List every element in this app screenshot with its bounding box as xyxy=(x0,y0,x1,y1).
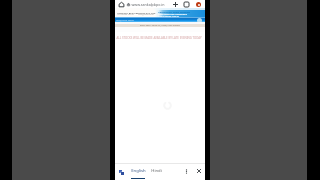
staticText: Hindi xyxy=(151,168,162,174)
button[interactable]: Close xyxy=(194,164,204,180)
button[interactable]: Menu xyxy=(197,18,202,23)
staticText: +91 98765 43210 info@sankalp.in xyxy=(117,13,154,16)
staticText: English xyxy=(131,168,146,174)
staticText: www.sankalpbpo.in xyxy=(131,2,165,7)
button[interactable]: More options xyxy=(182,164,190,180)
button[interactable]: Account xyxy=(192,0,205,8)
button[interactable]: Google Translate xyxy=(116,164,127,180)
staticText: ADMISSION OPEN SESSION xyxy=(158,10,190,13)
button[interactable]: Switch tabs xyxy=(181,0,192,8)
staticText: Regd. office : Sector 62, Noida, Uttar P… xyxy=(140,24,180,27)
staticText: ALL STOCKS WILL BE MADE AVAILABLE BY LAT… xyxy=(116,36,202,40)
staticText: NEW BATCHES STARTING xyxy=(158,12,187,15)
staticText: SANKALP BPO SERVICES PVT LTD. xyxy=(117,11,156,14)
button[interactable]: www.sankalpbpo.in xyxy=(127,0,170,8)
staticText: ENQUIRE NOW xyxy=(116,18,134,21)
button[interactable]: English xyxy=(129,164,147,180)
button[interactable]: Hindi xyxy=(148,164,164,180)
staticText: CALL 98765 43210 xyxy=(158,14,179,17)
button[interactable]: Home xyxy=(115,0,127,8)
button[interactable]: New tab xyxy=(170,0,181,8)
